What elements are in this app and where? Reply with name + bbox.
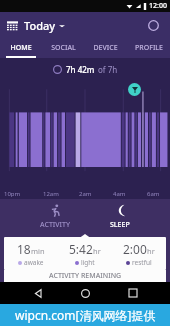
staticText: DEVICE [93,43,118,53]
staticText: of 7h [98,64,118,75]
button[interactable]: SLEEP [94,204,146,230]
button[interactable]: Calendar [7,18,65,33]
staticText: 4am [113,190,126,198]
button[interactable]: PROFILE [127,38,170,58]
staticText: 12am [43,190,59,198]
button[interactable]: 18 [4,237,166,270]
staticText: 12:00 [149,1,167,11]
staticText: hr [93,246,101,256]
button[interactable]: Recent apps [123,283,143,303]
staticText: Today [24,18,56,33]
staticText: min [31,246,45,256]
staticText: restful [132,258,152,267]
staticText: light [81,258,95,267]
staticText: 7h 42m [66,64,95,75]
staticText: 18 [17,241,31,257]
staticText: 2:00 [123,241,147,257]
staticText: PROFILE [135,43,163,53]
staticText: hr [147,246,155,256]
staticText: SLEEP [110,220,130,230]
staticText: 2am [79,190,92,198]
button[interactable]: HOME [0,38,42,58]
other: Calendar [7,20,18,31]
button[interactable]: SOCIAL [42,38,84,58]
staticText: ACTIVITY REMAINING [49,271,122,281]
staticText: ACTIVITY [40,220,71,230]
staticText: 5:42 [69,241,93,257]
button[interactable]: Back [28,283,48,303]
staticText: wipcn.com[清风网络]提供 [15,307,156,323]
button[interactable]: ACTIVITY [24,204,86,230]
staticText: SOCIAL [51,43,76,53]
staticText: 10pm [4,190,21,198]
button[interactable]: Home [75,283,95,303]
button[interactable]: Sleep marker [128,83,141,96]
button[interactable]: ACTIVITY REMAINING [4,270,166,282]
staticText: 6am [147,190,160,198]
button[interactable]: Profile [144,16,162,34]
staticText: HOME [10,43,32,53]
button[interactable]: DEVICE [84,38,127,58]
staticText: awake [24,258,44,267]
